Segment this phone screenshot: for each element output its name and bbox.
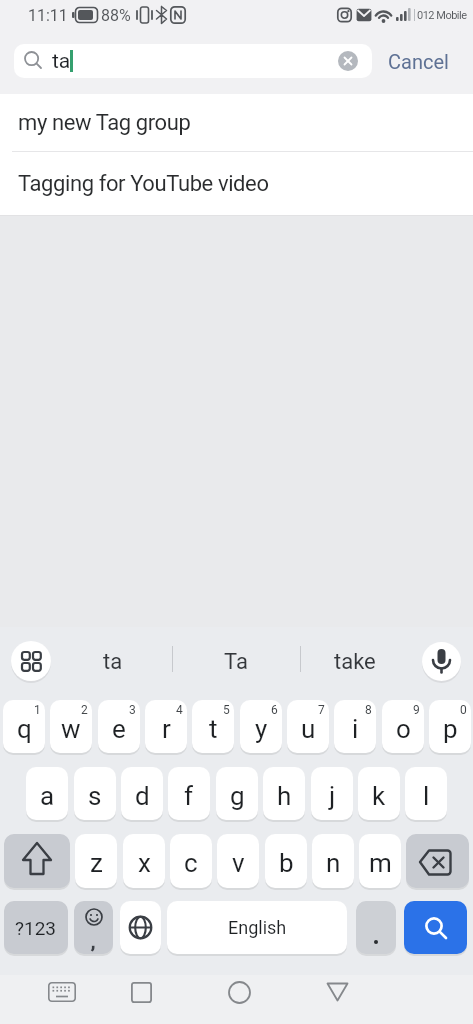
staticText: 7 bbox=[318, 703, 325, 717]
staticText: Tagging for YouTube video bbox=[18, 171, 269, 197]
staticText: Ta bbox=[224, 649, 248, 675]
staticText: 4 bbox=[176, 703, 183, 717]
staticText: 9 bbox=[413, 703, 420, 717]
button[interactable] bbox=[422, 642, 461, 681]
staticText: 2 bbox=[81, 703, 88, 717]
staticText: i bbox=[352, 714, 359, 744]
staticText: 1 bbox=[34, 703, 41, 717]
staticText: ?123 bbox=[15, 917, 57, 939]
button[interactable] bbox=[4, 834, 70, 888]
button[interactable]: c bbox=[170, 834, 212, 888]
staticText: q bbox=[17, 714, 32, 744]
staticText: English bbox=[228, 917, 287, 938]
staticText: d bbox=[135, 781, 150, 811]
button[interactable] bbox=[14, 44, 372, 78]
staticText: n bbox=[326, 848, 341, 878]
staticText: take bbox=[334, 649, 376, 675]
staticText: a bbox=[40, 781, 55, 811]
staticText: 8 bbox=[365, 703, 372, 717]
staticText: x bbox=[138, 848, 151, 878]
staticText: 012 Mobile bbox=[417, 9, 467, 22]
button[interactable] bbox=[42, 977, 82, 1007]
button[interactable]: b bbox=[265, 834, 307, 888]
button[interactable]: w bbox=[50, 700, 92, 753]
button[interactable]: e bbox=[98, 700, 140, 753]
staticText: y bbox=[255, 714, 268, 744]
button[interactable]: u bbox=[287, 700, 329, 753]
button[interactable]: r bbox=[145, 700, 187, 753]
button[interactable] bbox=[226, 977, 252, 1007]
button[interactable]: , bbox=[74, 901, 113, 954]
button[interactable]: q bbox=[3, 700, 45, 753]
staticText: 5 bbox=[223, 703, 230, 717]
button[interactable]: j bbox=[311, 767, 353, 820]
staticText: j bbox=[329, 781, 336, 811]
button[interactable]: Cancel bbox=[380, 46, 456, 76]
button[interactable]: l bbox=[405, 767, 447, 820]
staticText: m bbox=[369, 848, 392, 878]
button[interactable] bbox=[11, 641, 51, 681]
button[interactable]: i bbox=[334, 700, 376, 753]
staticText: o bbox=[396, 714, 411, 744]
button[interactable]: x bbox=[123, 834, 165, 888]
button[interactable]: d bbox=[121, 767, 163, 820]
button[interactable] bbox=[128, 977, 154, 1007]
button[interactable]: English bbox=[167, 901, 347, 954]
staticText: g bbox=[230, 781, 245, 811]
staticText: v bbox=[232, 848, 245, 878]
button[interactable]: k bbox=[358, 767, 400, 820]
button[interactable] bbox=[356, 901, 396, 954]
staticText: c bbox=[184, 848, 198, 878]
staticText: 6 bbox=[271, 703, 278, 717]
staticText: k bbox=[372, 781, 386, 811]
staticText: s bbox=[88, 781, 102, 811]
button[interactable]: p bbox=[429, 700, 471, 753]
staticText: t bbox=[209, 714, 218, 744]
staticText: my new Tag group bbox=[18, 110, 191, 136]
staticText: Cancel bbox=[388, 50, 449, 73]
button[interactable]: s bbox=[74, 767, 116, 820]
button[interactable] bbox=[404, 901, 467, 954]
button[interactable]: v bbox=[217, 834, 259, 888]
button[interactable]: f bbox=[168, 767, 210, 820]
staticText: h bbox=[277, 781, 292, 811]
button[interactable]: Tagging for YouTube video bbox=[0, 152, 473, 215]
staticText: , bbox=[91, 930, 96, 952]
button[interactable]: my new Tag group bbox=[0, 94, 473, 151]
button[interactable] bbox=[120, 901, 161, 954]
staticText: ta bbox=[52, 49, 71, 74]
button[interactable]: z bbox=[75, 834, 117, 888]
button[interactable] bbox=[324, 977, 350, 1007]
staticText: l bbox=[423, 781, 430, 811]
staticText: 0 bbox=[460, 703, 467, 717]
staticText: e bbox=[112, 714, 126, 744]
staticText: z bbox=[90, 848, 103, 878]
staticText: b bbox=[279, 848, 294, 878]
staticText: r bbox=[162, 714, 171, 744]
button[interactable]: m bbox=[359, 834, 401, 888]
button[interactable]: h bbox=[263, 767, 305, 820]
staticText: f bbox=[184, 781, 194, 811]
staticText: 3 bbox=[129, 703, 136, 717]
staticText: p bbox=[443, 714, 458, 744]
staticText: w bbox=[61, 714, 81, 744]
staticText: 88% bbox=[101, 6, 131, 25]
button[interactable]: ?123 bbox=[4, 901, 68, 954]
staticText: 11:11 bbox=[28, 6, 68, 25]
button[interactable]: o bbox=[382, 700, 424, 753]
button[interactable]: g bbox=[216, 767, 258, 820]
button[interactable]: y bbox=[240, 700, 282, 753]
staticText: u bbox=[301, 714, 316, 744]
staticText: ta bbox=[103, 649, 123, 675]
button[interactable]: a bbox=[26, 767, 68, 820]
button[interactable]: n bbox=[312, 834, 354, 888]
button[interactable] bbox=[406, 834, 469, 888]
button[interactable]: t bbox=[192, 700, 234, 753]
